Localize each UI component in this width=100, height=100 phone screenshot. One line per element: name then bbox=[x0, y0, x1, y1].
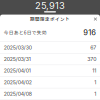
button[interactable]: 2025/03/30 bbox=[0, 42, 100, 53]
staticText: 今日あと6日で失効 bbox=[4, 29, 47, 36]
staticText: 67 bbox=[90, 44, 96, 51]
button[interactable]: 2025/04/08 bbox=[0, 88, 100, 100]
button[interactable]: 2025/03/31 bbox=[0, 53, 100, 65]
staticText: 25,913 bbox=[35, 0, 65, 11]
staticText: 2025/03/31 bbox=[4, 56, 31, 62]
staticText: 期間限定ポイント bbox=[30, 16, 70, 22]
staticText: 2025/04/08 bbox=[4, 91, 32, 97]
button[interactable]: 閉じる bbox=[91, 14, 100, 24]
button[interactable]: 2025/04/02 bbox=[0, 77, 100, 88]
staticText: 1 bbox=[94, 91, 96, 97]
staticText: 916 bbox=[83, 28, 96, 37]
staticText: 2025/04/01 bbox=[4, 68, 31, 74]
staticText: 370 bbox=[87, 56, 96, 62]
staticText: 2025/04/02 bbox=[4, 79, 32, 85]
staticText: 1 bbox=[94, 79, 96, 85]
staticText: 11 bbox=[92, 68, 96, 74]
button[interactable]: 2025/04/01 bbox=[0, 65, 100, 77]
staticText: 2025/03/30 bbox=[4, 44, 32, 51]
